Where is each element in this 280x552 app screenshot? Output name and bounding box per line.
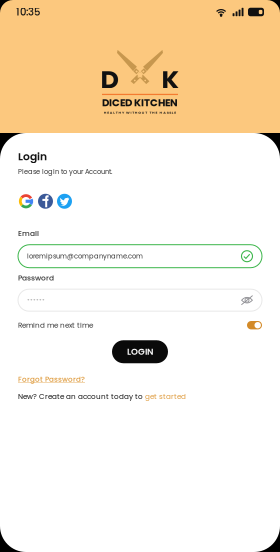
staticText: Forgot Password? — [18, 374, 85, 384]
button[interactable]: Forgot Password? — [18, 374, 85, 384]
button[interactable]: LOGIN — [112, 340, 168, 363]
staticText: 10:35 — [16, 5, 40, 19]
button[interactable]: Remind me next time — [18, 320, 262, 330]
button[interactable]: Sign in with Google — [18, 193, 34, 209]
button[interactable]: get started — [145, 391, 186, 401]
staticText: Password — [18, 273, 54, 283]
button[interactable]: Sign in with Facebook — [38, 194, 53, 209]
staticText: HEALTHY WITHOUT THE HASSLE — [104, 110, 176, 115]
staticText: •••••• — [27, 295, 45, 305]
button[interactable]: Sign in with Twitter — [57, 194, 72, 209]
staticText: Please login to your Account. — [18, 167, 112, 176]
staticText: Email — [18, 228, 39, 239]
staticText: Remind me next time — [18, 320, 93, 330]
staticText: LOGIN — [127, 346, 153, 358]
staticText: DICED KITCHEN — [102, 96, 178, 110]
staticText: New? Create an account today to — [18, 391, 145, 401]
staticText: K — [161, 61, 179, 97]
staticText: Login — [18, 149, 47, 164]
staticText: get started — [145, 391, 186, 401]
staticText: loremipsum@companyname.com — [27, 252, 143, 261]
staticText: D — [100, 61, 118, 97]
